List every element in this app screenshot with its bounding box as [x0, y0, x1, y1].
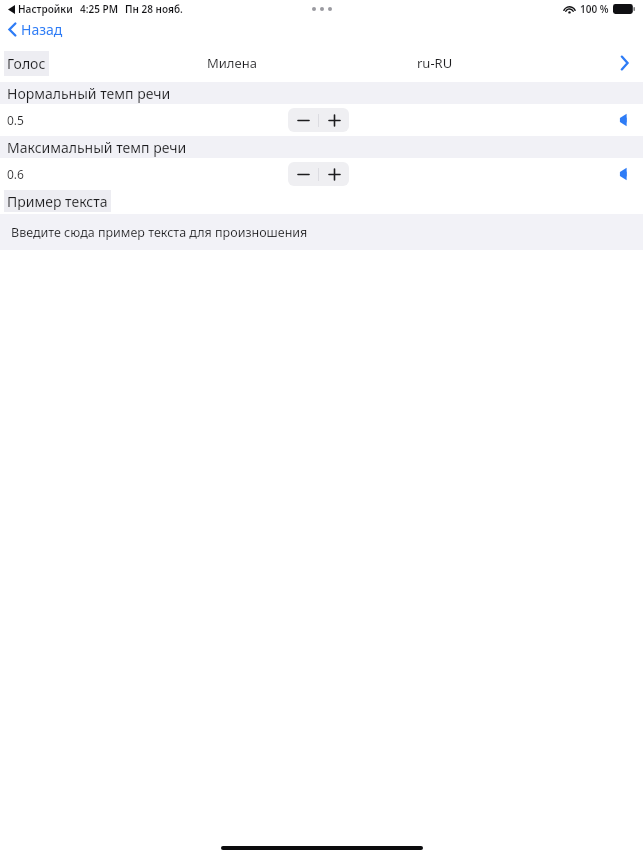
- button[interactable]: Введите сюда пример текста для произноше…: [0, 214, 643, 250]
- staticText: 4:25 PM: [80, 2, 118, 16]
- button[interactable]: Назад: [0, 18, 73, 40]
- staticText: Введите сюда пример текста для произноше…: [11, 224, 308, 241]
- staticText: Голос: [7, 54, 46, 73]
- staticText: 100 %: [580, 2, 609, 16]
- staticText: Милена: [207, 54, 257, 72]
- button[interactable]: Открыть: [613, 52, 635, 74]
- button[interactable]: Увеличить: [319, 162, 349, 186]
- button[interactable]: Уменьшить: [288, 108, 318, 132]
- staticText: Пример текста: [7, 192, 108, 210]
- button[interactable]: Голос: [0, 44, 643, 82]
- staticText: 0.6: [7, 166, 24, 182]
- button[interactable]: Увеличить: [319, 108, 349, 132]
- button[interactable]: Прослушать: [612, 163, 634, 185]
- staticText: ru-RU: [417, 54, 453, 72]
- staticText: Нормальный темп речи: [7, 84, 171, 103]
- staticText: Пн 28 нояб.: [125, 2, 183, 16]
- button[interactable]: Прослушать: [612, 109, 634, 131]
- button[interactable]: Уменьшить: [288, 162, 318, 186]
- staticText: Назад: [21, 20, 63, 39]
- staticText: Настройки: [18, 2, 73, 16]
- staticText: 0.5: [7, 112, 24, 128]
- staticText: Максимальный темп речи: [7, 138, 187, 157]
